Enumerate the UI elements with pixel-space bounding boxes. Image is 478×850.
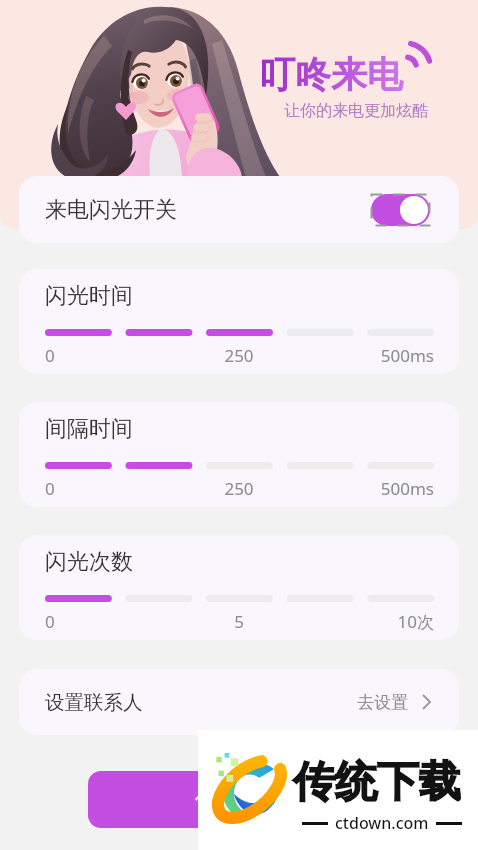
staticText: 间隔时间 (45, 415, 133, 443)
staticText: 5 (174, 610, 304, 633)
staticText: 250 (174, 477, 304, 500)
staticText: 让你的来电更加炫酷 (284, 101, 428, 121)
button[interactable]: 闪光次数 (19, 535, 459, 640)
staticText: 闪光时间 (45, 282, 133, 310)
button[interactable]: 间隔时间 (19, 402, 459, 507)
staticText: 0 (45, 610, 174, 633)
staticText: 保存设置 (195, 786, 283, 814)
staticText: 10次 (304, 610, 434, 633)
staticText: 传统下载 (293, 756, 461, 809)
staticText: 叮咚来电 (259, 52, 403, 97)
staticText: ctdown.com (335, 812, 429, 834)
staticText: 去设置 (357, 692, 408, 713)
staticText: 0 (45, 344, 174, 367)
staticText: 0 (45, 477, 174, 500)
staticText: 设置联系人 (45, 690, 143, 715)
staticText: 500ms (304, 344, 434, 367)
button[interactable]: 闪光时间 (19, 269, 459, 374)
button[interactable]: 保存设置 (88, 771, 390, 828)
button[interactable]: 来电闪光开关 (19, 176, 459, 243)
staticText: 500ms (304, 477, 434, 500)
staticText: 250 (174, 344, 304, 367)
staticText: 闪光次数 (45, 548, 133, 576)
button[interactable]: 设置联系人 (19, 669, 459, 735)
button[interactable]: Incoming call flash toggle, on (371, 194, 430, 226)
staticText: 来电闪光开关 (45, 196, 177, 224)
